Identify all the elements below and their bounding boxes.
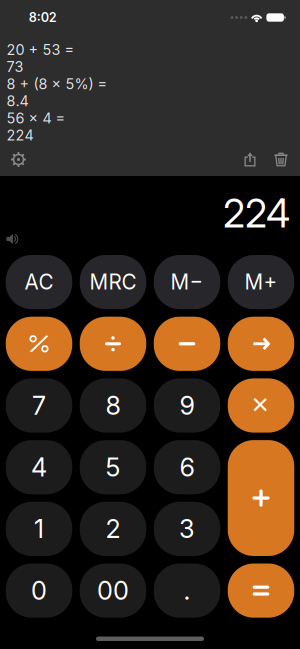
staticText: 5 [105, 452, 120, 483]
button[interactable]: AC [6, 255, 72, 309]
staticText: 224 [6, 127, 33, 144]
staticText: 3 [179, 514, 195, 544]
button[interactable]: 00 [80, 563, 146, 618]
button[interactable]: 7 [6, 378, 72, 433]
staticText: MRC [89, 270, 136, 295]
button[interactable]: Divide [80, 317, 146, 371]
staticText: 00 [97, 575, 129, 606]
button[interactable]: 5 [80, 440, 146, 494]
staticText: 8:02 [29, 10, 57, 25]
button[interactable]: Backspace [228, 317, 294, 371]
staticText: 1 [34, 514, 44, 544]
staticText: M− [170, 270, 203, 295]
button[interactable]: Settings [3, 147, 33, 171]
staticText: 8 + (8 × 5%) = [6, 75, 107, 93]
staticText: . [183, 575, 190, 606]
button[interactable]: Clear history [268, 147, 294, 171]
button[interactable]: MRC [80, 255, 146, 309]
button[interactable]: 6 [154, 440, 220, 494]
button[interactable]: 1 [6, 502, 72, 556]
staticText: 4 [31, 452, 47, 483]
staticText: 0 [31, 575, 47, 606]
staticText: 6 [179, 452, 194, 483]
staticText: 73 [6, 58, 23, 75]
button[interactable]: 9 [154, 378, 220, 433]
button[interactable]: 0 [6, 563, 72, 618]
button[interactable]: 8 [80, 378, 146, 433]
staticText: 9 [179, 390, 194, 421]
staticText: 2 [105, 514, 120, 544]
staticText: M+ [244, 270, 277, 295]
staticText: 20 + 53 = [6, 41, 74, 58]
button[interactable]: Equals [228, 563, 294, 618]
button[interactable]: 2 [80, 502, 146, 556]
button[interactable]: 4 [6, 440, 72, 494]
button[interactable]: . [154, 563, 220, 618]
button[interactable]: Multiply [228, 378, 294, 433]
staticText: 224 [223, 190, 290, 237]
staticText: 7 [32, 390, 46, 421]
button[interactable]: Plus [228, 440, 294, 556]
button[interactable]: M+ [228, 255, 294, 309]
button[interactable]: Minus [154, 317, 220, 371]
staticText: 8.4 [6, 92, 28, 110]
button[interactable]: Sound [3, 232, 21, 246]
staticText: 8 [105, 390, 120, 421]
button[interactable]: M− [154, 255, 220, 309]
button[interactable]: 3 [154, 502, 220, 556]
button[interactable]: Percent [6, 317, 72, 371]
staticText: AC [24, 270, 53, 295]
button[interactable]: Share [237, 147, 263, 171]
staticText: 56 × 4 = [6, 109, 65, 127]
